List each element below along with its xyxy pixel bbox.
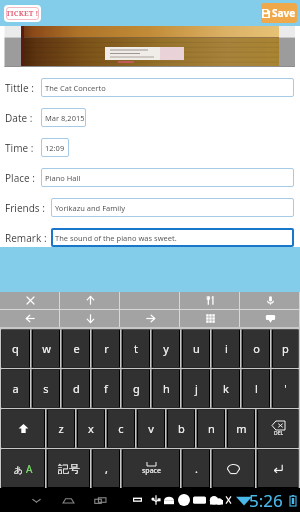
staticText: w — [42, 341, 51, 356]
button[interactable]: w — [33, 330, 59, 367]
staticText: ' — [284, 381, 287, 396]
staticText: d — [73, 381, 80, 396]
staticText: 5:26 — [249, 489, 283, 512]
button[interactable]: The Cat Concerto — [41, 78, 294, 97]
button[interactable]: aA — [2, 450, 44, 487]
staticText: The Cat Concerto — [45, 83, 106, 93]
button[interactable]: 記号 — [48, 450, 89, 487]
button[interactable]: shift — [2, 410, 44, 447]
staticText: . — [195, 461, 198, 476]
button[interactable]: b — [168, 410, 194, 447]
staticText: Piano Hall — [45, 173, 81, 183]
staticText: TICKET ! — [6, 9, 39, 19]
staticText: , — [105, 461, 108, 476]
staticText: r — [104, 341, 109, 356]
button[interactable]: Ticket home — [4, 5, 41, 22]
button[interactable]: u — [183, 330, 209, 367]
button[interactable]: s — [33, 370, 59, 407]
staticText: p — [282, 341, 289, 356]
button[interactable]: Recent apps — [90, 488, 110, 512]
staticText: k — [223, 381, 229, 396]
button[interactable]: r — [93, 330, 119, 367]
button[interactable]: e — [63, 330, 89, 367]
button[interactable]: Yorikazu and Family — [51, 198, 294, 217]
staticText: m — [236, 421, 247, 436]
button[interactable]: 12:09 — [41, 138, 69, 157]
staticText: Time : — [5, 141, 34, 155]
staticText: j — [195, 381, 198, 396]
staticText: t — [134, 341, 138, 356]
button[interactable]: k — [213, 370, 239, 407]
staticText: q — [12, 341, 19, 356]
button[interactable]: a — [2, 370, 29, 407]
staticText: l — [255, 381, 258, 396]
button[interactable]: j — [183, 370, 209, 407]
staticText: space — [142, 466, 161, 476]
staticText: The sound of the piano was sweet. — [55, 233, 177, 243]
button[interactable]: y — [153, 330, 179, 367]
button[interactable] — [120, 292, 180, 309]
staticText: s — [43, 381, 49, 396]
button[interactable]: Settings — [180, 292, 240, 309]
staticText: n — [208, 421, 215, 436]
button[interactable]: o — [243, 330, 269, 367]
staticText: o — [253, 341, 260, 356]
button[interactable]: Move up — [60, 292, 120, 309]
button[interactable]: space — [123, 450, 179, 487]
staticText: Date : — [5, 111, 33, 125]
button[interactable]: Move right — [120, 310, 180, 327]
button[interactable]: i — [213, 330, 239, 367]
staticText: Mar 8,2015 — [45, 113, 85, 123]
button[interactable]: h — [153, 370, 179, 407]
button[interactable]: Piano Hall — [41, 168, 294, 187]
staticText: c — [118, 421, 124, 436]
staticText: Save — [272, 6, 296, 20]
button[interactable]: ' — [273, 370, 298, 407]
button[interactable]: Back — [26, 488, 46, 512]
button[interactable]: , — [93, 450, 119, 487]
button[interactable]: Close keyboard — [0, 292, 60, 309]
staticText: b — [178, 421, 185, 436]
button[interactable]: Symbols — [180, 310, 240, 327]
staticText: 12:09 — [45, 143, 65, 153]
button[interactable]: t — [123, 330, 149, 367]
button[interactable]: q — [2, 330, 29, 367]
staticText: x — [88, 421, 94, 436]
button[interactable]: x — [78, 410, 104, 447]
staticText: h — [163, 381, 170, 396]
staticText: y — [163, 341, 169, 356]
button[interactable]: m — [228, 410, 254, 447]
button[interactable]: n — [198, 410, 224, 447]
button[interactable]: p — [273, 330, 298, 367]
button[interactable]: Save — [261, 3, 297, 23]
button[interactable]: . — [183, 450, 209, 487]
staticText: e — [73, 341, 80, 356]
staticText: g — [133, 381, 140, 396]
button[interactable]: emoji — [213, 450, 254, 487]
staticText: Remark : — [5, 231, 47, 245]
button[interactable]: The sound of the piano was sweet. — [51, 228, 294, 247]
staticText: 記号 — [58, 462, 80, 476]
button[interactable]: enter — [258, 450, 298, 487]
button[interactable]: Move left — [0, 310, 60, 327]
button[interactable]: Move down — [60, 310, 120, 327]
button[interactable]: f — [93, 370, 119, 407]
staticText: A — [26, 462, 33, 476]
staticText: あ — [14, 464, 24, 475]
staticText: Friends : — [5, 201, 45, 215]
button[interactable]: d — [63, 370, 89, 407]
button[interactable]: v — [138, 410, 164, 447]
button[interactable]: Voice input — [240, 292, 300, 309]
button[interactable]: Switch keyboard — [240, 310, 300, 327]
staticText: z — [58, 421, 64, 436]
button[interactable]: Mar 8,2015 — [41, 108, 86, 127]
button[interactable]: l — [243, 370, 269, 407]
staticText: i — [225, 341, 228, 356]
staticText: Tittle : — [5, 81, 34, 95]
button[interactable]: Home — [58, 488, 78, 512]
button[interactable]: z — [48, 410, 74, 447]
staticText: DEL — [274, 430, 284, 437]
button[interactable]: g — [123, 370, 149, 407]
button[interactable]: del — [258, 410, 298, 447]
button[interactable]: c — [108, 410, 134, 447]
